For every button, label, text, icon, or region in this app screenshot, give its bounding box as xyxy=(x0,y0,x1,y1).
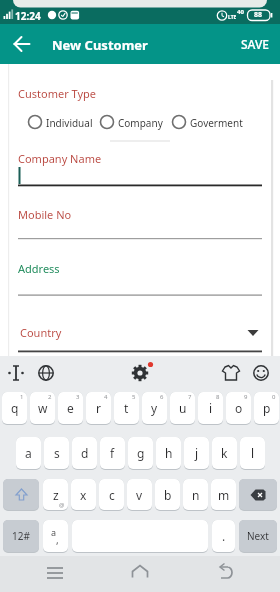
staticText: 4 xyxy=(104,393,108,401)
button[interactable]: h xyxy=(156,437,181,469)
staticText: u xyxy=(179,400,187,416)
button[interactable] xyxy=(18,319,262,352)
button[interactable]: f xyxy=(100,437,125,469)
staticText: Customer Type xyxy=(18,86,97,101)
button[interactable]: k xyxy=(212,437,237,469)
staticText: 2 xyxy=(48,393,52,401)
staticText: g xyxy=(137,445,145,461)
button[interactable] xyxy=(3,479,39,510)
button[interactable]: s xyxy=(44,437,69,469)
staticText: a xyxy=(51,526,57,538)
button[interactable]: u xyxy=(170,392,195,424)
staticText: 3 xyxy=(76,393,80,401)
staticText: n xyxy=(192,487,200,503)
staticText: o xyxy=(235,400,243,416)
button[interactable]: i xyxy=(198,392,223,424)
staticText: LTE xyxy=(228,14,237,21)
button[interactable]: m xyxy=(211,479,236,510)
staticText: c xyxy=(109,487,115,503)
button[interactable]: Next xyxy=(239,520,277,552)
staticText: k xyxy=(221,445,228,461)
button[interactable]: n xyxy=(183,479,208,510)
staticText: p xyxy=(263,400,271,416)
staticText: e xyxy=(67,400,74,416)
button[interactable] xyxy=(217,360,245,388)
staticText: x xyxy=(80,487,87,503)
staticText: Mobile No xyxy=(18,207,72,222)
button[interactable]: p xyxy=(254,392,279,424)
staticText: @ xyxy=(59,501,65,509)
button[interactable]: e xyxy=(58,392,83,424)
button[interactable] xyxy=(211,559,239,589)
staticText: w xyxy=(38,400,48,416)
staticText: . xyxy=(222,528,226,544)
button[interactable]: SAVE xyxy=(234,30,276,58)
button[interactable]: o xyxy=(226,392,251,424)
staticText: 7 xyxy=(188,393,192,401)
staticText: 88 xyxy=(254,10,263,20)
button[interactable]: g xyxy=(128,437,153,469)
staticText: Company xyxy=(118,116,163,130)
staticText: Goverment xyxy=(190,116,243,130)
staticText: 12# xyxy=(12,529,30,543)
button[interactable] xyxy=(4,360,32,388)
button[interactable] xyxy=(41,559,69,589)
staticText: q xyxy=(11,400,19,416)
button[interactable]: l xyxy=(240,437,265,469)
button[interactable]: a xyxy=(43,520,68,552)
button[interactable] xyxy=(126,559,154,589)
staticText: Individual xyxy=(46,116,93,130)
button[interactable]: z xyxy=(43,479,68,510)
staticText: 8 xyxy=(216,393,220,401)
staticText: New Customer xyxy=(52,36,148,54)
button[interactable]: y xyxy=(142,392,167,424)
button[interactable] xyxy=(247,360,275,388)
staticText: d xyxy=(81,445,89,461)
staticText: SAVE xyxy=(241,36,270,52)
button[interactable]: d xyxy=(72,437,97,469)
button[interactable]: v xyxy=(127,479,152,510)
button[interactable] xyxy=(98,109,170,135)
button[interactable] xyxy=(126,360,154,388)
button[interactable]: 12# xyxy=(3,520,39,552)
staticText: b xyxy=(164,487,172,503)
staticText: Next xyxy=(247,529,269,543)
staticText: t xyxy=(124,400,129,416)
staticText: 9 xyxy=(244,393,248,401)
staticText: s xyxy=(54,445,60,461)
staticText: a xyxy=(25,445,32,461)
staticText: z xyxy=(53,487,59,503)
staticText: j xyxy=(195,445,199,461)
button[interactable]: c xyxy=(99,479,124,510)
staticText: h xyxy=(165,445,173,461)
button[interactable] xyxy=(34,360,62,388)
button[interactable]: . xyxy=(212,520,235,552)
staticText: f xyxy=(110,445,115,461)
button[interactable] xyxy=(8,30,36,58)
button[interactable]: x xyxy=(71,479,96,510)
staticText: Company Name xyxy=(18,151,102,166)
button[interactable]: r xyxy=(86,392,111,424)
button[interactable] xyxy=(26,109,98,135)
staticText: 6 xyxy=(160,393,164,401)
staticText: v xyxy=(136,487,143,503)
button[interactable]: b xyxy=(155,479,180,510)
staticText: 12:24 xyxy=(15,9,41,23)
button[interactable]: q xyxy=(2,392,27,424)
staticText: i xyxy=(209,400,213,416)
staticText: m xyxy=(218,487,230,503)
staticText: r xyxy=(96,400,101,416)
button[interactable]: t xyxy=(114,392,139,424)
button[interactable]: j xyxy=(184,437,209,469)
staticText: 1 xyxy=(20,393,24,401)
staticText: l xyxy=(251,445,255,461)
button[interactable] xyxy=(170,109,244,135)
button[interactable] xyxy=(239,479,277,510)
button[interactable]: w xyxy=(30,392,55,424)
staticText: Country xyxy=(20,325,62,340)
staticText: 5 xyxy=(132,393,136,401)
staticText: 40 xyxy=(237,8,244,16)
button[interactable]: a xyxy=(16,437,41,469)
staticText: , xyxy=(56,533,59,547)
